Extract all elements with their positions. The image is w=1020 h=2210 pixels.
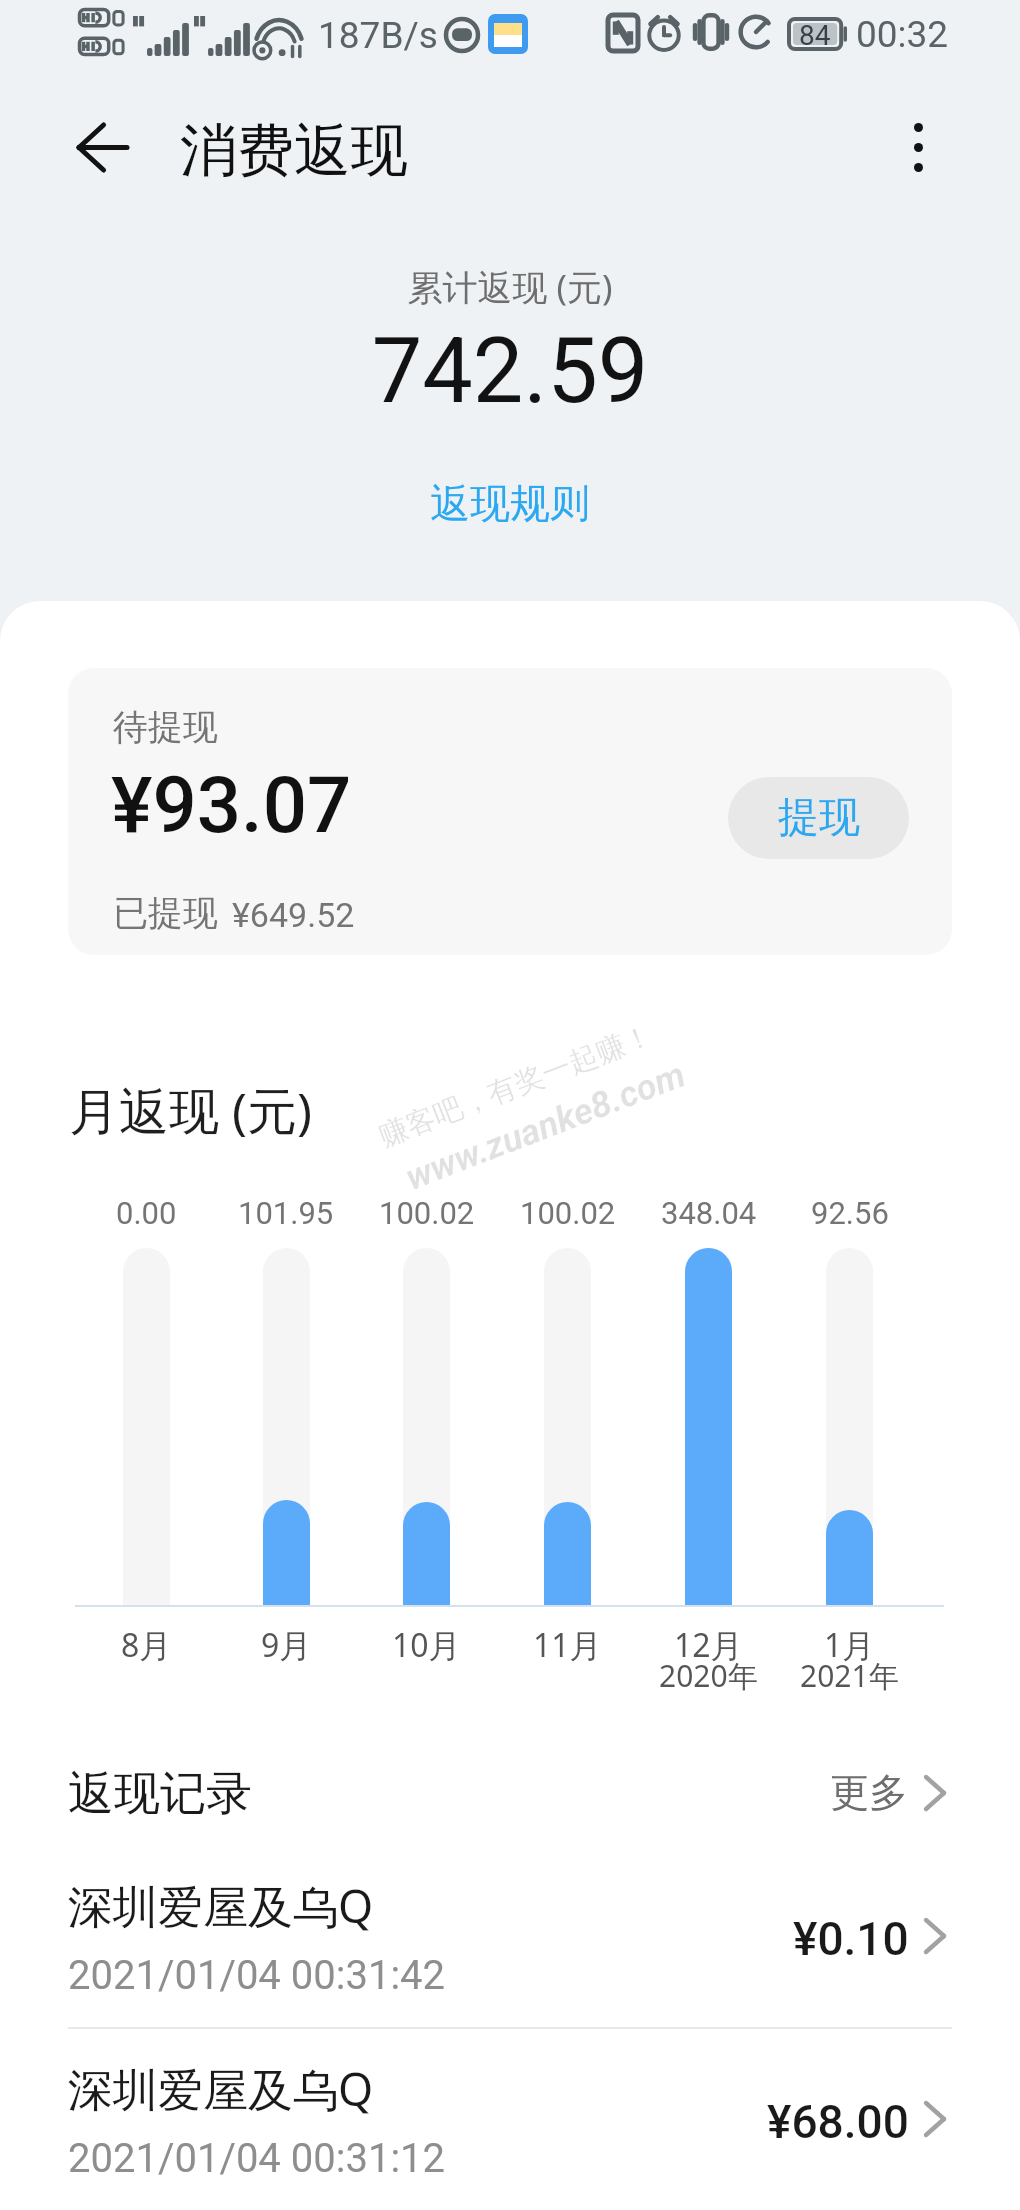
button[interactable]: Back	[58, 103, 146, 191]
staticText: 00:32	[856, 13, 949, 56]
staticText: 返现规则	[430, 478, 590, 528]
staticText: 赚客吧，有奖一起赚！	[374, 1016, 658, 1155]
staticText: 2021年	[800, 1655, 899, 1696]
staticText: 348.04	[661, 1195, 757, 1231]
staticText: 累计返现 (元)	[0, 263, 1020, 311]
staticText: 9月	[261, 1623, 312, 1667]
button[interactable]: 深圳爱屋及乌Q	[0, 1843, 1020, 2007]
staticText: 返现记录	[68, 1765, 252, 1823]
button[interactable]: 待提现	[68, 668, 952, 955]
button[interactable]: 更多	[814, 1756, 892, 1830]
staticText: 已提现	[113, 891, 218, 935]
staticText: 2021/01/04 00:31:42	[68, 1952, 446, 1999]
staticText: 92.56	[811, 1195, 889, 1231]
staticText: 1月	[824, 1623, 875, 1667]
staticText: 月返现 (元)	[69, 1076, 312, 1144]
staticText: ¥0.10	[793, 1912, 909, 1966]
staticText: 更多	[830, 1768, 908, 1817]
staticText: 100.02	[520, 1195, 616, 1231]
staticText: ¥68.00	[767, 2095, 909, 2149]
button[interactable]: 提现	[728, 777, 909, 859]
staticText: 187B/s	[318, 14, 438, 57]
button[interactable]: 深圳爱屋及乌Q	[0, 2026, 1020, 2190]
staticText: ¥93.07	[111, 760, 352, 851]
staticText: 8月	[121, 1623, 172, 1667]
staticText: ¥649.52	[232, 895, 355, 935]
staticText: 待提现	[113, 705, 218, 749]
staticText: www.zuanke8.com	[400, 1054, 691, 1199]
button[interactable]: More options	[875, 104, 961, 190]
staticText: 深圳爱屋及乌Q	[68, 1875, 374, 1936]
staticText: 提现	[778, 792, 860, 844]
staticText: 0.00	[116, 1195, 177, 1231]
staticText: 深圳爱屋及乌Q	[68, 2058, 374, 2119]
staticText: 101.95	[238, 1195, 334, 1231]
staticText: 消费返现	[180, 115, 408, 187]
staticText: 2021/01/04 00:31:12	[68, 2135, 446, 2182]
staticText: 100.02	[379, 1195, 475, 1231]
staticText: 2020年	[659, 1655, 758, 1696]
staticText: 11月	[533, 1623, 602, 1667]
button[interactable]: 返现规则	[386, 468, 634, 538]
staticText: 742.59	[0, 319, 1020, 424]
staticText: 10月	[392, 1623, 461, 1667]
staticText: 12月	[674, 1623, 743, 1667]
staticText: 84	[799, 19, 831, 49]
